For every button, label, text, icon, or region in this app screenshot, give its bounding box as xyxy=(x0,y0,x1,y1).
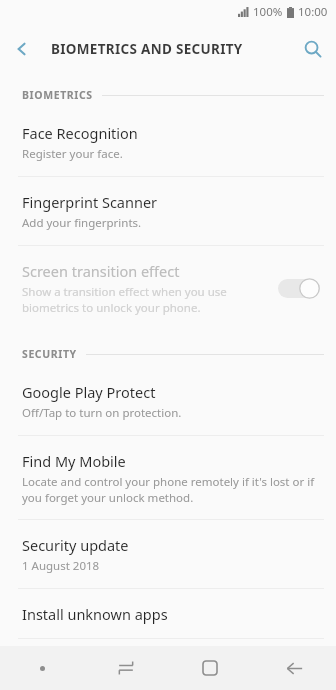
staticText: Register your face. xyxy=(22,146,123,162)
button[interactable]: Back xyxy=(252,646,336,690)
staticText: BIOMETRICS xyxy=(22,88,93,102)
staticText: 1 August 2018 xyxy=(22,558,100,574)
staticText: Find My Mobile xyxy=(22,451,126,471)
staticText: Screen transition effect xyxy=(22,261,180,281)
button[interactable]: Install unknown apps xyxy=(0,589,336,638)
staticText: Off/Tap to turn on protection. xyxy=(22,405,182,421)
button[interactable]: Screen transition effect xyxy=(0,246,336,329)
button[interactable]: Search xyxy=(290,26,336,72)
staticText: Install unknown apps xyxy=(22,604,168,624)
button[interactable]: Back xyxy=(0,27,44,71)
staticText: Google Play Protect xyxy=(22,382,156,402)
staticText: SECURITY xyxy=(22,347,77,361)
button[interactable]: Security update xyxy=(0,520,336,588)
button[interactable]: Keyboard indicator xyxy=(0,646,84,690)
staticText: Face Recognition xyxy=(22,123,138,143)
button[interactable]: Face Recognition xyxy=(0,108,336,176)
staticText: Fingerprint Scanner xyxy=(22,192,158,212)
button[interactable]: Screen transition effect toggle xyxy=(278,277,320,299)
staticText: Show a transition effect when you use bi… xyxy=(22,284,227,315)
button[interactable]: Recents xyxy=(84,646,168,690)
button[interactable]: Find My Mobile xyxy=(0,436,336,519)
button[interactable]: Google Play Protect xyxy=(0,367,336,435)
staticText: Security update xyxy=(22,535,129,555)
staticText: BIOMETRICS AND SECURITY xyxy=(51,40,243,58)
staticText: 10:00 xyxy=(298,4,328,20)
button[interactable]: Home xyxy=(168,646,252,690)
staticText: 100% xyxy=(253,4,283,20)
staticText: Locate and control your phone remotely i… xyxy=(22,474,315,505)
staticText: Add your fingerprints. xyxy=(22,215,142,231)
button[interactable]: Fingerprint Scanner xyxy=(0,177,336,245)
